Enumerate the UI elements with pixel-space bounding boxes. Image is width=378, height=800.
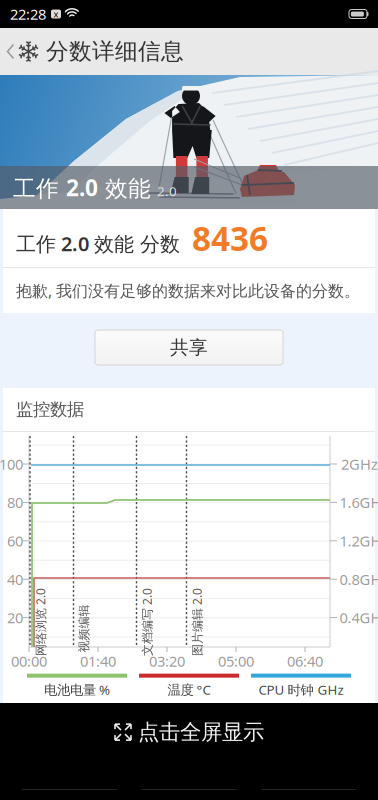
staticText: 0.4GHz: [339, 608, 378, 627]
button[interactable]: 点击全屏显示: [0, 703, 378, 800]
staticText: 2.0: [151, 182, 177, 200]
staticText: 100: [0, 454, 23, 474]
staticText: 1.6GHz: [339, 493, 378, 512]
staticText: 效能: [98, 175, 151, 203]
staticText: 视频编辑: [60, 621, 108, 636]
staticText: CPU 时钟 GHz: [258, 681, 343, 698]
staticText: 文档编写 2.0: [113, 614, 181, 630]
staticText: 电池电量 %: [44, 681, 110, 698]
staticText: 2GHz: [341, 454, 378, 474]
staticText: 00:00: [11, 651, 47, 671]
staticText: 01:40: [80, 651, 116, 671]
staticText: 22:28: [10, 4, 46, 24]
staticText: 03:20: [149, 651, 185, 671]
staticText: 8436: [192, 216, 268, 260]
staticText: 网络浏览 2.0: [6, 614, 74, 630]
staticText: 60: [7, 531, 23, 551]
staticText: 05:00: [218, 651, 254, 671]
staticText: 工作: [13, 175, 66, 203]
staticText: 图片编辑 2.0: [163, 614, 231, 630]
staticText: 分数详细信息: [46, 38, 184, 65]
staticText: 抱歉, 我们没有足够的数据来对比此设备的分数。: [16, 280, 360, 301]
staticText: 温度 °C: [167, 681, 210, 698]
staticText: 40: [7, 569, 23, 589]
staticText: 2.0: [66, 172, 98, 202]
staticText: 1.2GHz: [339, 531, 378, 551]
staticText: 06:40: [287, 651, 323, 671]
staticText: 0.8GHz: [339, 569, 378, 589]
staticText: 共享: [170, 336, 208, 359]
staticText: 80: [7, 493, 23, 512]
staticText: 监控数据: [16, 399, 84, 420]
staticText: x: [53, 8, 58, 20]
button[interactable]: Back: [0, 28, 42, 75]
staticText: 工作 2.0 效能 分数: [16, 230, 180, 257]
button[interactable]: 共享: [0, 330, 378, 365]
staticText: 点击全屏显示: [138, 719, 264, 745]
staticText: 20: [7, 608, 23, 627]
